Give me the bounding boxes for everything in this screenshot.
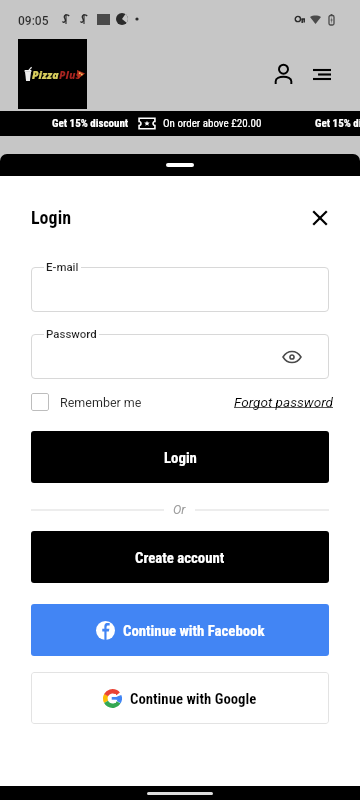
- button[interactable]: [31, 334, 329, 379]
- staticText: 09:05: [18, 14, 49, 28]
- button[interactable]: Close: [305, 203, 334, 232]
- button[interactable]: Login: [31, 431, 329, 483]
- button[interactable]: Create account: [31, 531, 329, 583]
- button[interactable]: [31, 267, 329, 312]
- button[interactable]: Continue with Facebook: [31, 604, 329, 656]
- button[interactable]: Remember me: [31, 393, 142, 411]
- staticText: Pizza: [32, 68, 59, 82]
- staticText: Create account: [135, 549, 225, 566]
- staticText: Plus: [59, 68, 81, 82]
- button[interactable]: Forgot password: [234, 394, 333, 410]
- button[interactable]: Continue with Google: [31, 672, 329, 724]
- button[interactable]: Account: [265, 56, 302, 93]
- staticText: Login: [164, 449, 197, 466]
- staticText: Continue with Google: [130, 690, 257, 707]
- staticText: Continue with Facebook: [123, 622, 265, 639]
- staticText: Remember me: [60, 395, 142, 410]
- staticText: Get 15% discount: [315, 117, 360, 130]
- button[interactable]: Menu: [303, 56, 340, 93]
- staticText: Password: [46, 327, 97, 340]
- staticText: Or: [173, 502, 186, 517]
- staticText: E-mail: [46, 260, 79, 273]
- staticText: Login: [31, 207, 72, 228]
- staticText: Get 15% discount: [52, 117, 129, 130]
- staticText: Forgot password: [234, 394, 333, 410]
- button[interactable]: Show password: [280, 345, 304, 369]
- staticText: On order above £20.00: [163, 117, 262, 130]
